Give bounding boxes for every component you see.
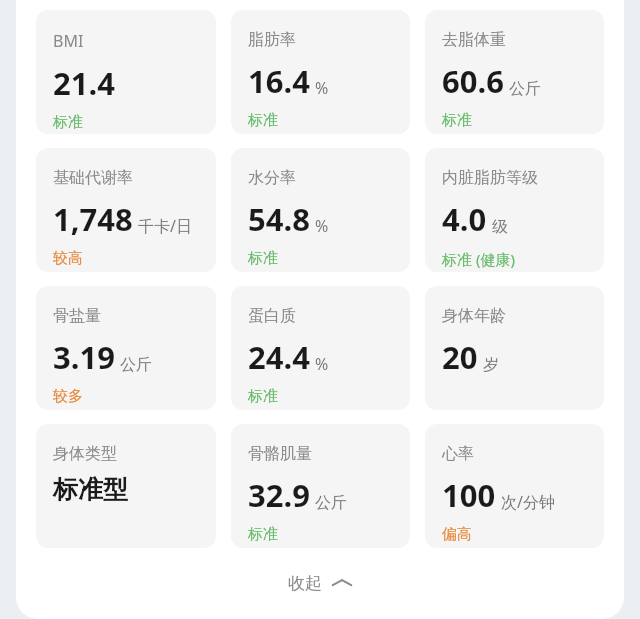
staticText: 偏高 bbox=[442, 525, 472, 544]
staticText: 身体类型 bbox=[53, 444, 117, 464]
staticText: % bbox=[315, 77, 329, 99]
staticText: 16.4 bbox=[248, 60, 310, 102]
staticText: 千卡/日 bbox=[138, 215, 192, 237]
staticText: 4.0 bbox=[442, 198, 487, 240]
button[interactable]: 水分率 bbox=[231, 148, 410, 272]
staticText: 蛋白质 bbox=[248, 306, 296, 326]
staticText: 水分率 bbox=[248, 168, 296, 188]
staticText: 21.4 bbox=[53, 62, 115, 104]
staticText: BMI bbox=[53, 30, 84, 52]
button[interactable]: 内脏脂肪等级 bbox=[425, 148, 604, 272]
staticText: % bbox=[315, 215, 329, 237]
button[interactable]: 蛋白质 bbox=[231, 286, 410, 410]
staticText: 标准 (健康) bbox=[442, 249, 515, 269]
staticText: 次/分钟 bbox=[501, 491, 555, 513]
button[interactable]: 去脂体重 bbox=[425, 10, 604, 134]
other: Collapse bbox=[331, 576, 353, 590]
staticText: 标准 bbox=[442, 111, 472, 130]
button[interactable]: 身体年龄 bbox=[425, 286, 604, 410]
staticText: 标准 bbox=[248, 111, 278, 130]
staticText: 标准 bbox=[248, 249, 278, 268]
staticText: 公斤 bbox=[120, 355, 152, 375]
staticText: 32.9 bbox=[248, 474, 310, 516]
staticText: 心率 bbox=[442, 444, 474, 464]
staticText: 标准 bbox=[53, 113, 83, 132]
staticText: 24.4 bbox=[248, 336, 310, 378]
staticText: 1,748 bbox=[53, 198, 133, 240]
button[interactable]: 收起 bbox=[36, 560, 604, 606]
staticText: 公斤 bbox=[509, 79, 541, 99]
button[interactable]: 身体类型 bbox=[36, 424, 216, 548]
button[interactable]: 脂肪率 bbox=[231, 10, 410, 134]
staticText: 骨骼肌量 bbox=[248, 444, 312, 464]
staticText: 基础代谢率 bbox=[53, 168, 133, 188]
staticText: 岁 bbox=[483, 355, 499, 375]
button[interactable]: 骨骼肌量 bbox=[231, 424, 410, 548]
staticText: % bbox=[315, 353, 329, 375]
staticText: 标准 bbox=[248, 387, 278, 406]
staticText: 内脏脂肪等级 bbox=[442, 168, 538, 188]
staticText: 级 bbox=[492, 217, 508, 237]
staticText: 较多 bbox=[53, 387, 83, 406]
staticText: 3.19 bbox=[53, 336, 115, 378]
button[interactable]: 骨盐量 bbox=[36, 286, 216, 410]
staticText: 54.8 bbox=[248, 198, 310, 240]
staticText: 较高 bbox=[53, 249, 83, 268]
button[interactable]: BMI bbox=[36, 10, 216, 134]
staticText: 20 bbox=[442, 336, 478, 378]
staticText: 标准 bbox=[248, 525, 278, 544]
staticText: 脂肪率 bbox=[248, 30, 296, 50]
staticText: 公斤 bbox=[315, 493, 347, 513]
staticText: 收起 bbox=[288, 573, 322, 594]
button[interactable]: 心率 bbox=[425, 424, 604, 548]
button[interactable]: 基础代谢率 bbox=[36, 148, 216, 272]
staticText: 100 bbox=[442, 474, 496, 516]
staticText: 标准型 bbox=[53, 474, 128, 505]
staticText: 去脂体重 bbox=[442, 30, 506, 50]
staticText: 骨盐量 bbox=[53, 306, 101, 326]
staticText: 身体年龄 bbox=[442, 306, 506, 326]
staticText: 60.6 bbox=[442, 60, 504, 102]
